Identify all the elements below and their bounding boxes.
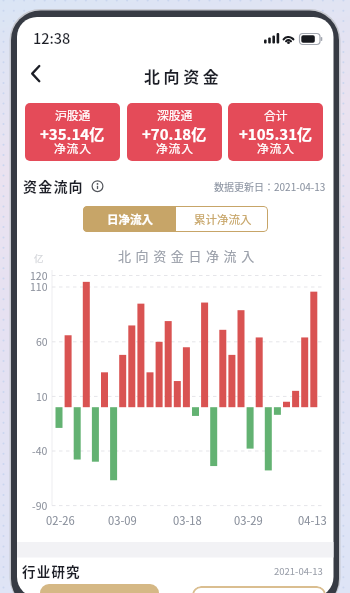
staticText: 03-29 (234, 512, 263, 528)
staticText: 北向资金 (144, 64, 223, 87)
staticText: 亿 (34, 251, 44, 265)
staticText: 净流入 (54, 139, 92, 156)
staticText: -40 (32, 443, 48, 458)
staticText: 2021-04-13 (274, 564, 323, 578)
button[interactable]: 日净流入 (83, 206, 176, 232)
staticText: +35.14亿 (40, 123, 105, 145)
staticText: +70.18亿 (142, 123, 207, 145)
button[interactable] (40, 584, 159, 593)
staticText: 北向资金日净流入 (118, 246, 259, 265)
staticText: 120 (30, 268, 48, 283)
button[interactable]: 深股通 (127, 103, 222, 161)
button[interactable] (24, 63, 46, 84)
staticText: -90 (32, 498, 48, 513)
staticText: 04-13 (298, 512, 327, 528)
staticText: +105.31亿 (239, 123, 312, 145)
staticText: 资金流向 (23, 176, 84, 196)
staticText: 02-26 (46, 512, 75, 528)
button[interactable] (192, 586, 326, 593)
staticText: 净流入 (156, 139, 194, 156)
staticText: 110 (30, 279, 48, 294)
staticText: 数据更新日：2021-04-13 (214, 179, 326, 193)
staticText: 净流入 (257, 139, 295, 156)
staticText: 沪股通 (55, 106, 91, 123)
staticText: 12:38 (33, 27, 71, 48)
staticText: 累计净流入 (194, 211, 252, 228)
button[interactable]: 合计 (228, 103, 323, 161)
staticText: 行业研究 (22, 561, 81, 581)
staticText: 10 (36, 389, 48, 404)
staticText: 03-09 (108, 512, 137, 528)
staticText: 合计 (264, 106, 288, 123)
staticText: 深股通 (157, 106, 193, 123)
button[interactable]: 沪股通 (25, 103, 120, 161)
staticText: 日净流入 (107, 211, 153, 228)
staticText: 60 (36, 334, 48, 349)
staticText: 03-18 (173, 512, 202, 528)
button[interactable]: 累计净流入 (176, 206, 268, 232)
button[interactable] (91, 180, 104, 193)
